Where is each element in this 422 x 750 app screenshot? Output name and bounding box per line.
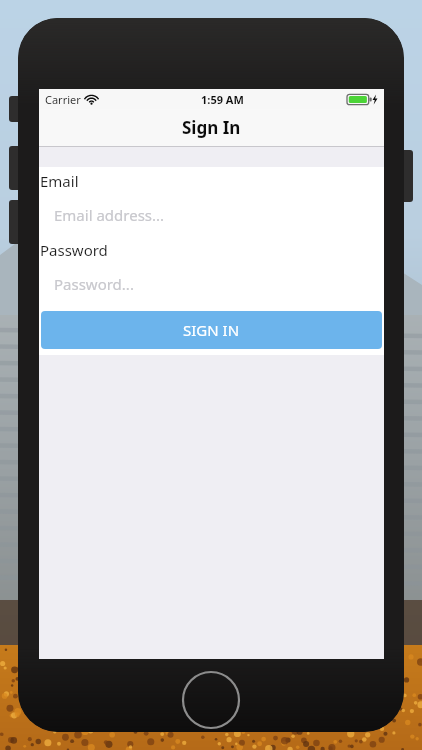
staticText: Email xyxy=(40,171,79,191)
staticText: Password... xyxy=(54,274,134,294)
staticText: Carrier xyxy=(45,92,81,107)
staticText: Email address... xyxy=(54,205,165,225)
button[interactable]: SIGN IN xyxy=(41,311,382,349)
other: Battery charging xyxy=(347,93,378,106)
button[interactable]: Password... xyxy=(39,263,384,305)
staticText: SIGN IN xyxy=(183,320,240,340)
button[interactable]: Email address... xyxy=(39,194,384,236)
staticText: 1:59 AM xyxy=(201,92,244,107)
staticText: Password xyxy=(40,240,108,260)
other: Wi-Fi signal xyxy=(85,94,98,105)
staticText: Sign In xyxy=(182,116,241,139)
